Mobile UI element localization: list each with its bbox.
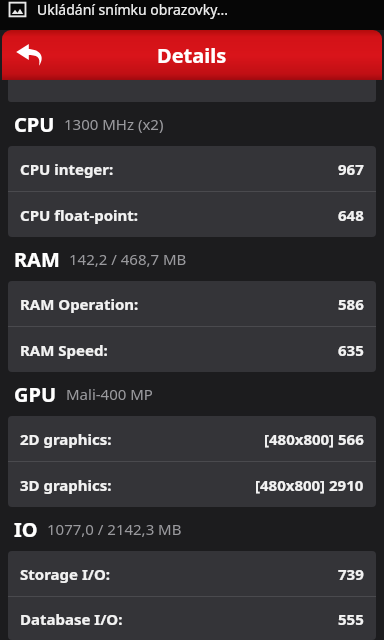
staticText: CPU float-point: (20, 205, 139, 225)
button[interactable]: 3D graphics: (8, 462, 376, 507)
staticText: 648 (338, 205, 364, 225)
staticText: 1077,0 / 2142,3 MB (47, 519, 182, 539)
button[interactable]: CPU integer: (8, 146, 376, 191)
staticText: [480x800] 566 (264, 429, 364, 449)
staticText: 967 (338, 159, 364, 179)
staticText: 586 (338, 294, 364, 314)
staticText: GPU (14, 381, 57, 408)
staticText: RAM (14, 246, 60, 273)
button[interactable]: RAM Operation: (8, 281, 376, 326)
staticText: 2D graphics: (20, 429, 112, 449)
button[interactable]: 2D graphics: (8, 416, 376, 461)
staticText: 635 (338, 340, 364, 360)
staticText: 555 (338, 609, 364, 629)
staticText: Mali-400 MP (66, 384, 153, 404)
staticText: Storage I/O: (20, 564, 111, 584)
staticText: CPU (14, 111, 55, 138)
staticText: RAM Operation: (20, 294, 139, 314)
staticText: Database I/O: (20, 609, 123, 629)
staticText: 1300 MHz (x2) (64, 114, 164, 134)
staticText: 3D graphics: (20, 475, 112, 495)
button[interactable]: CPU float-point: (8, 192, 376, 237)
staticText: RAM Speed: (20, 340, 108, 360)
staticText: Details (157, 42, 227, 69)
button[interactable]: Back (6, 31, 54, 79)
staticText: 142,2 / 468,7 MB (69, 249, 187, 269)
staticText: Ukládání snímku obrazovky... (37, 0, 229, 19)
staticText: [480x800] 2910 (255, 475, 364, 495)
staticText: CPU integer: (20, 159, 114, 179)
button[interactable]: Storage I/O: (8, 551, 376, 596)
staticText: 739 (338, 564, 364, 584)
staticText: IO (14, 516, 38, 543)
button[interactable]: RAM Speed: (8, 327, 376, 372)
button[interactable]: Database I/O: (8, 597, 376, 640)
